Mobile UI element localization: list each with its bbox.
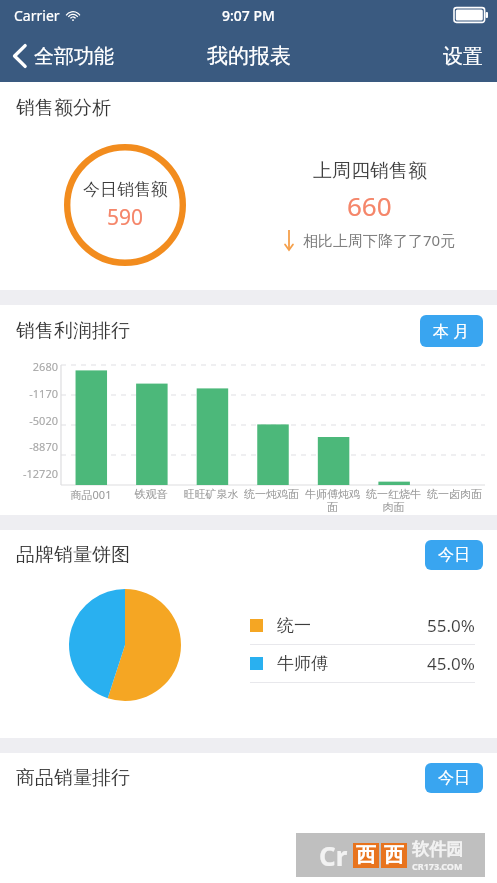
button[interactable]: 今日 (425, 763, 483, 793)
staticText: CR173.COM (412, 860, 463, 872)
staticText: 统一炖鸡面 (241, 487, 302, 501)
staticText: 品牌销量饼图 (16, 543, 130, 567)
staticText: 统一红烧牛 肉面 (363, 487, 424, 514)
staticText: -1170 (29, 386, 58, 401)
staticText: 本 月 (433, 320, 470, 342)
staticText: 660 (347, 188, 392, 223)
staticText: 55.0% (427, 614, 475, 637)
staticText: 我的报表 (207, 43, 291, 69)
staticText: 统一 (277, 615, 311, 636)
staticText: 铁观音 (121, 487, 181, 501)
staticText: 今日销售额 (83, 179, 168, 200)
staticText: -8870 (29, 439, 58, 454)
staticText: 牛师傅炖鸡 面 (302, 487, 363, 514)
button[interactable]: 全部功能 (0, 37, 126, 75)
staticText: 上周四销售额 (313, 159, 427, 183)
staticText: 西 (356, 843, 376, 868)
staticText: 牛师傅 (277, 653, 328, 674)
staticText: 销售额分析 (16, 96, 111, 120)
staticText: 西 (384, 843, 404, 868)
staticText: 全部功能 (34, 44, 114, 69)
staticText: Carrier (14, 6, 60, 25)
staticText: 今日 (438, 545, 470, 565)
staticText: -12720 (22, 466, 58, 481)
staticText: Cr (319, 838, 348, 873)
button[interactable]: 牛师傅 (250, 645, 475, 682)
staticText: 软件园 (412, 839, 463, 860)
staticText: 商品001 (61, 487, 121, 502)
staticText: 销售利润排行 (16, 319, 130, 343)
staticText: 2680 (32, 359, 58, 374)
button[interactable]: 设置 (429, 36, 497, 77)
staticText: 设置 (443, 44, 483, 69)
button[interactable]: 本 月 (420, 315, 483, 347)
staticText: 590 (107, 203, 144, 232)
staticText: 9:07 PM (222, 6, 275, 25)
button[interactable]: 今日 (425, 540, 483, 570)
staticText: 旺旺矿泉水 (181, 487, 241, 501)
staticText: 商品销量排行 (16, 766, 130, 790)
staticText: 相比上周下降了了70元 (303, 230, 456, 250)
staticText: 今日 (438, 768, 470, 788)
staticText: 统一卤肉面 (424, 487, 485, 501)
staticText: 45.0% (427, 652, 475, 675)
staticText: -5020 (29, 413, 58, 428)
button[interactable]: 统一 (250, 607, 475, 644)
